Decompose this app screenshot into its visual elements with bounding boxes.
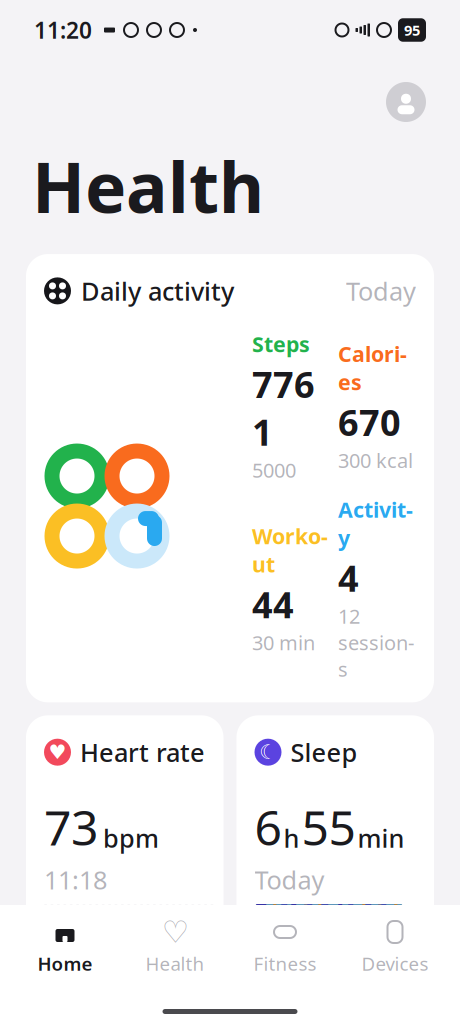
button[interactable]: ♥: [26, 715, 223, 982]
staticText: 55: [301, 795, 355, 859]
button[interactable]: Daily activity: [26, 254, 434, 702]
button[interactable]: Devices: [340, 915, 450, 980]
staticText: 44: [252, 580, 294, 628]
staticText: min: [357, 821, 404, 855]
staticText: Workout: [252, 522, 328, 578]
staticText: ♥: [48, 741, 66, 763]
staticText: Sleep: [290, 735, 357, 769]
staticText: ♡: [161, 915, 188, 949]
staticText: Heart rate: [80, 735, 205, 769]
staticText: Daily activity: [81, 274, 234, 308]
staticText: Home: [37, 951, 92, 976]
button[interactable]: ☾: [236, 715, 434, 982]
staticText: 7761: [252, 360, 315, 456]
staticText: Devices: [361, 951, 428, 976]
staticText: 11:18: [44, 863, 107, 896]
staticText: Health: [145, 951, 204, 976]
staticText: bpm: [103, 821, 159, 855]
staticText: 95: [404, 20, 420, 40]
staticText: Today: [346, 274, 416, 308]
staticText: 300 kcal: [338, 447, 413, 473]
staticText: 73: [44, 795, 98, 859]
staticText: Fitness: [253, 951, 316, 976]
staticText: 12 sessions: [338, 603, 414, 682]
staticText: Today: [254, 863, 324, 896]
staticText: 670: [338, 398, 401, 446]
staticText: 11:20: [34, 15, 92, 45]
staticText: 6: [254, 795, 281, 859]
staticText: ☾: [259, 741, 277, 763]
staticText: Calories: [338, 339, 407, 396]
staticText: Activity: [338, 495, 413, 552]
staticText: h: [283, 821, 299, 855]
staticText: 30 min: [252, 629, 315, 656]
button[interactable]: Fitness: [230, 915, 340, 980]
staticText: 5000: [252, 457, 296, 483]
button[interactable]: Home: [10, 915, 120, 980]
button[interactable]: O₂: [236, 995, 434, 1024]
button[interactable]: ♡: [120, 915, 230, 980]
button[interactable]: Mind and Body: [26, 995, 223, 1024]
staticText: Health: [32, 140, 264, 232]
staticText: 4: [338, 554, 359, 602]
button[interactable]: Profile: [386, 82, 426, 122]
staticText: Steps: [252, 330, 310, 358]
